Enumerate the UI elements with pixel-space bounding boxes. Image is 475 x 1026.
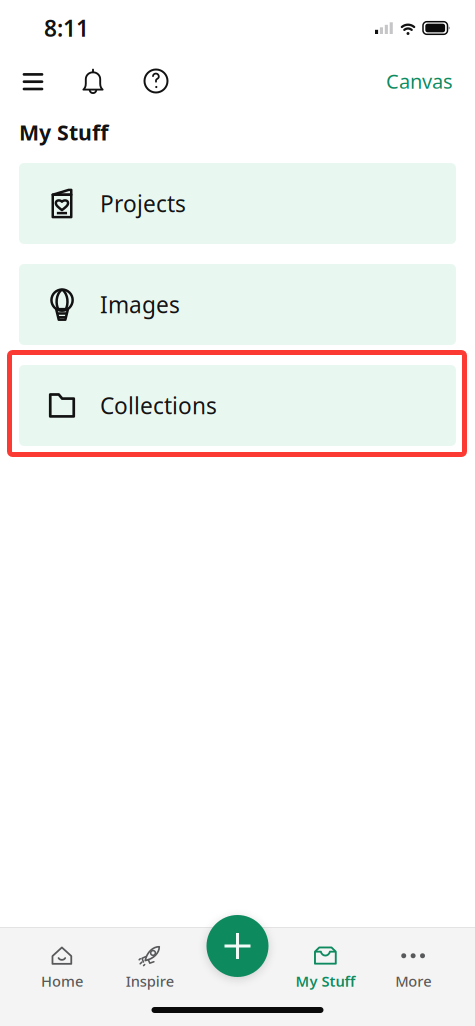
staticText: Images [100,289,180,319]
staticText: Projects [100,188,186,218]
staticText: More [395,971,431,991]
staticText: My Stuff [295,971,355,991]
staticText: 8:11 [44,13,89,43]
staticText: My Stuff [19,118,108,146]
button[interactable]: Help [132,56,180,106]
staticText: Collections [100,390,217,420]
staticText: Home [41,971,83,991]
staticText: Canvas [386,68,453,94]
staticText: Inspire [126,971,174,991]
button[interactable]: My Stuff [281,938,369,998]
button[interactable]: Home [18,938,106,998]
button[interactable]: Images [19,264,456,345]
button[interactable]: Collections [19,365,456,446]
button[interactable]: Inspire [106,938,194,998]
button[interactable]: Notifications [69,56,117,106]
button[interactable]: Create [206,915,268,977]
button[interactable]: Menu [9,56,57,106]
button[interactable]: More [369,938,457,998]
button[interactable]: Projects [19,163,456,244]
button[interactable]: Canvas [373,56,466,106]
